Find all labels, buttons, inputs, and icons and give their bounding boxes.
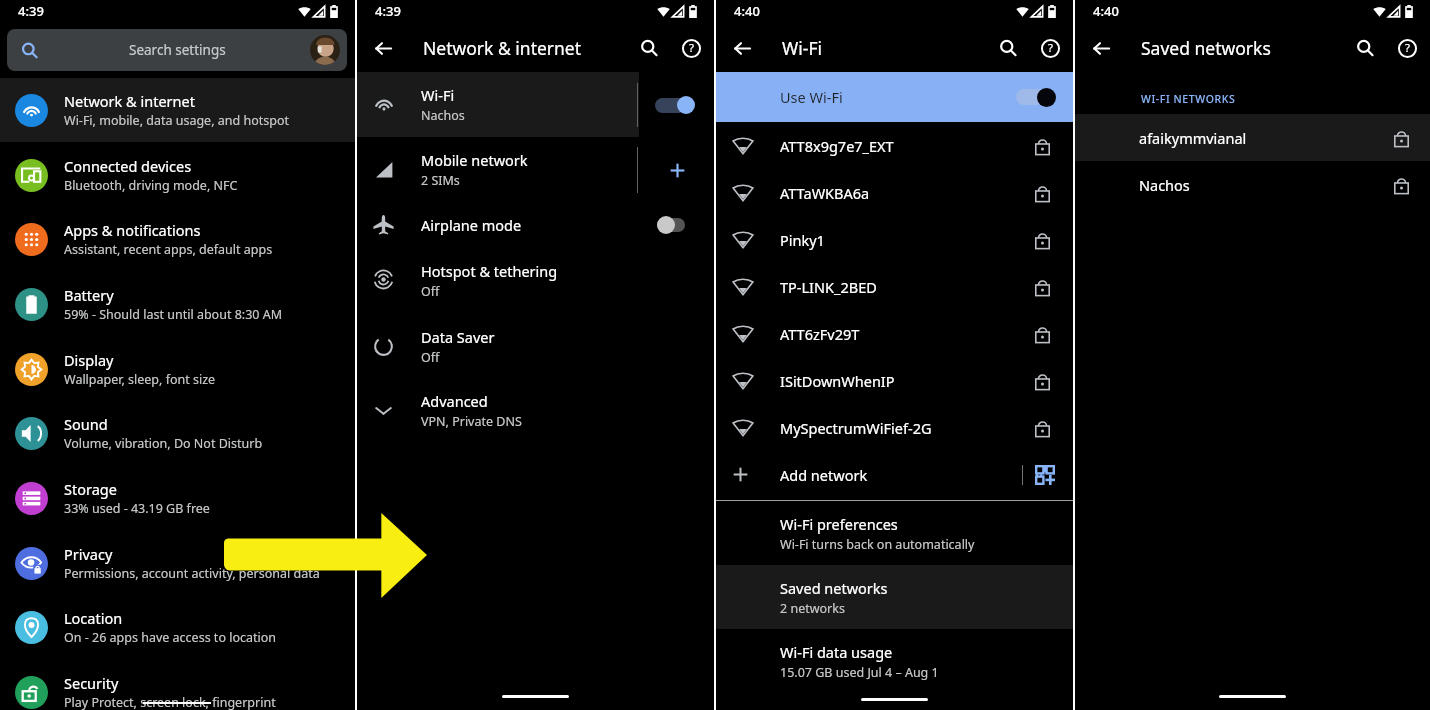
button[interactable]: Use Wi-Fi bbox=[716, 72, 1073, 122]
staticText: 4:40 bbox=[1093, 2, 1119, 20]
button[interactable]: Sound bbox=[0, 401, 355, 465]
staticText: Off bbox=[421, 283, 440, 300]
staticText: Network & internet bbox=[423, 36, 582, 60]
button[interactable]: ATTaWKBA6a bbox=[716, 169, 1073, 216]
staticText: Storage bbox=[64, 479, 117, 499]
staticText: Wi-Fi preferences bbox=[780, 514, 898, 534]
staticText: Volume, vibration, Do Not Disturb bbox=[64, 435, 263, 452]
staticText: 2 SIMs bbox=[421, 172, 460, 189]
staticText: 2 networks bbox=[780, 600, 845, 617]
staticText: MySpectrumWiFief-2G bbox=[780, 418, 932, 438]
button[interactable]: Back bbox=[730, 36, 754, 60]
button[interactable]: Scan QR code bbox=[1035, 465, 1055, 485]
staticText: ATTaWKBA6a bbox=[780, 183, 870, 203]
staticText: ATT6zFv29T bbox=[780, 324, 860, 344]
button[interactable]: Search bbox=[1348, 31, 1382, 65]
button[interactable]: Search bbox=[632, 31, 666, 65]
staticText: Assistant, recent apps, default apps bbox=[64, 241, 273, 258]
staticText: Advanced bbox=[421, 391, 488, 411]
button[interactable]: Wi-Fi data usage bbox=[780, 629, 1073, 693]
button[interactable]: MySpectrumWiFief-2G bbox=[716, 404, 1073, 451]
button[interactable]: Storage bbox=[0, 466, 355, 530]
button[interactable]: Back bbox=[371, 36, 395, 60]
button[interactable]: Account bbox=[310, 35, 340, 65]
staticText: Wi-Fi turns back on automatically bbox=[780, 536, 975, 553]
staticText: WI-FI NETWORKS bbox=[1141, 92, 1236, 106]
button[interactable]: ISitDownWhenIP bbox=[716, 357, 1073, 404]
button[interactable]: afaikymmvianal bbox=[1075, 114, 1430, 161]
staticText: Privacy bbox=[64, 544, 113, 564]
staticText: Mobile network bbox=[421, 150, 528, 170]
staticText: Security bbox=[64, 673, 119, 693]
button[interactable]: Help bbox=[1390, 31, 1424, 65]
staticText: 15.07 GB used Jul 4 – Aug 1 bbox=[780, 664, 939, 681]
staticText: Wi-Fi bbox=[782, 36, 823, 60]
staticText: Location bbox=[64, 608, 123, 628]
button[interactable]: ATT6zFv29T bbox=[716, 310, 1073, 357]
button[interactable]: TP-LINK_2BED bbox=[716, 263, 1073, 310]
staticText: Wi-Fi bbox=[421, 85, 455, 105]
staticText: Nachos bbox=[1139, 175, 1190, 195]
staticText: Nachos bbox=[421, 107, 465, 124]
staticText: Use Wi-Fi bbox=[780, 87, 843, 107]
button[interactable]: Search bbox=[991, 31, 1025, 65]
staticText: Wallpaper, sleep, font size bbox=[64, 371, 216, 388]
button[interactable]: Display bbox=[0, 337, 355, 401]
button[interactable]: Battery bbox=[0, 272, 355, 336]
staticText: Pinky1 bbox=[780, 230, 825, 250]
staticText: Bluetooth, driving mode, NFC bbox=[64, 177, 238, 194]
button[interactable]: Wi-Fi toggle bbox=[655, 94, 695, 116]
staticText: Play Protect, screen lock, fingerprint bbox=[64, 694, 276, 710]
button[interactable]: Back bbox=[1089, 36, 1113, 60]
staticText: Search settings bbox=[129, 41, 226, 59]
staticText: 4:39 bbox=[375, 2, 401, 20]
staticText: Airplane mode bbox=[421, 215, 714, 235]
button[interactable]: Airplane mode bbox=[357, 202, 714, 247]
staticText: 4:39 bbox=[18, 2, 44, 20]
button[interactable]: Apps & notifications bbox=[0, 207, 355, 271]
button[interactable]: Add network bbox=[716, 451, 1073, 498]
staticText: Data Saver bbox=[421, 327, 495, 347]
button[interactable]: Wi-Fi preferences bbox=[780, 501, 1073, 565]
staticText: Off bbox=[421, 349, 440, 366]
staticText: Connected devices bbox=[64, 156, 192, 176]
staticText: TP-LINK_2BED bbox=[780, 277, 877, 297]
button[interactable]: Location bbox=[0, 595, 355, 659]
staticText: VPN, Private DNS bbox=[421, 413, 522, 430]
button[interactable]: Mobile network bbox=[357, 137, 714, 202]
button[interactable]: Help bbox=[674, 31, 708, 65]
button[interactable]: Security bbox=[0, 660, 355, 710]
button[interactable]: Add SIM bbox=[660, 153, 694, 187]
button[interactable]: Privacy bbox=[0, 531, 355, 595]
button[interactable]: Pinky1 bbox=[716, 216, 1073, 263]
button[interactable]: Advanced bbox=[357, 378, 714, 443]
button[interactable]: Saved networks bbox=[780, 565, 1073, 629]
staticText: Saved networks bbox=[780, 578, 888, 598]
staticText: Sound bbox=[64, 414, 108, 434]
staticText: Permissions, account activity, personal … bbox=[64, 565, 320, 582]
staticText: 33% used - 43.19 GB free bbox=[64, 500, 210, 517]
button[interactable]: Help bbox=[1033, 31, 1067, 65]
button[interactable]: Search settings bbox=[7, 29, 347, 71]
staticText: Wi-Fi, mobile, data usage, and hotspot bbox=[64, 112, 289, 129]
staticText: ISitDownWhenIP bbox=[780, 371, 895, 391]
button[interactable]: Connected devices bbox=[0, 143, 355, 207]
staticText: ? bbox=[1048, 40, 1053, 56]
staticText: Wi-Fi data usage bbox=[780, 642, 893, 662]
staticText: Hotspot & tethering bbox=[421, 261, 558, 281]
staticText: 59% - Should last until about 8:30 AM bbox=[64, 306, 283, 323]
button[interactable]: Network & internet bbox=[0, 78, 355, 142]
staticText: Network & internet bbox=[64, 91, 195, 111]
staticText: ATT8x9g7e7_EXT bbox=[780, 136, 894, 156]
staticText: Display bbox=[64, 350, 114, 370]
button[interactable]: ATT8x9g7e7_EXT bbox=[716, 122, 1073, 169]
button[interactable]: Use Wi-Fi toggle bbox=[1016, 86, 1056, 108]
button[interactable]: Hotspot & tethering bbox=[357, 247, 714, 314]
button[interactable]: Airplane mode toggle bbox=[657, 214, 687, 236]
staticText: Saved networks bbox=[1141, 36, 1271, 60]
staticText: afaikymmvianal bbox=[1139, 128, 1247, 148]
staticText: Add network bbox=[780, 465, 868, 485]
button[interactable]: Nachos bbox=[1075, 161, 1430, 208]
button[interactable]: Wi-Fi bbox=[357, 72, 714, 137]
button[interactable]: Data Saver bbox=[357, 314, 714, 378]
